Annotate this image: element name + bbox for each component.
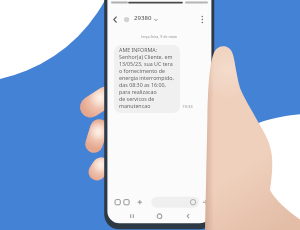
staticText: AME INFORMA: Senhor(a) Cliente, em 13/05…	[119, 46, 174, 109]
staticText: terça-feira, 9 de maio	[107, 34, 211, 39]
staticText: 19:33	[182, 104, 193, 110]
staticText: 29380	[134, 13, 152, 21]
